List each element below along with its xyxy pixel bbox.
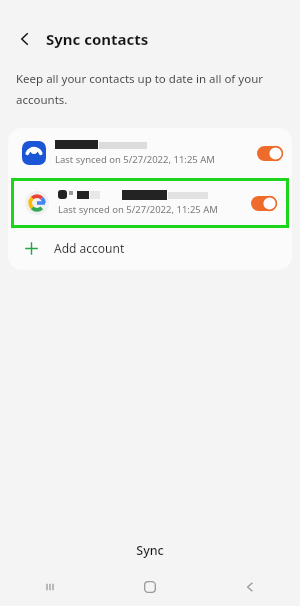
button[interactable]: Back — [200, 571, 300, 603]
staticText: Keep all your contacts up to date in all… — [16, 71, 286, 108]
button[interactable]: Recent apps — [0, 571, 100, 603]
staticText: Sync contacts — [46, 29, 149, 49]
staticText: Add account — [54, 240, 125, 256]
button[interactable]: Back — [14, 28, 36, 50]
button[interactable]: Sync — [0, 535, 300, 565]
button[interactable]: Last synced on 5/27/2022, 11:25 AM — [8, 128, 292, 178]
button[interactable]: Sync toggle — [248, 128, 292, 178]
button[interactable]: Last synced on 5/27/2022, 11:25 AM — [14, 181, 286, 225]
button[interactable]: Sync toggle — [242, 181, 286, 225]
staticText: Last synced on 5/27/2022, 11:25 AM — [55, 153, 215, 166]
button[interactable]: Home — [100, 571, 200, 603]
staticText: Last synced on 5/27/2022, 11:25 AM — [58, 203, 218, 216]
button[interactable]: Add account — [8, 228, 292, 268]
staticText: Sync — [136, 542, 164, 559]
